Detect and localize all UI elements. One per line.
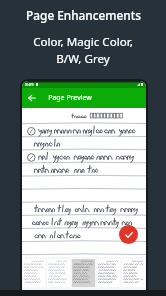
- button[interactable]: [23, 259, 45, 287]
- button[interactable]: Back: [22, 88, 42, 108]
- button[interactable]: [122, 259, 145, 287]
- button[interactable]: [97, 259, 120, 287]
- staticText: Page Enhancements: [26, 7, 141, 23]
- staticText: 8:09: [25, 82, 34, 88]
- button[interactable]: [47, 259, 70, 287]
- staticText: B/W, Grey: [56, 51, 110, 67]
- staticText: Color, Magic Color,: [33, 34, 133, 50]
- button[interactable]: Confirm: [119, 225, 138, 244]
- staticText: Page Preview: [48, 93, 92, 103]
- button[interactable]: [72, 259, 95, 287]
